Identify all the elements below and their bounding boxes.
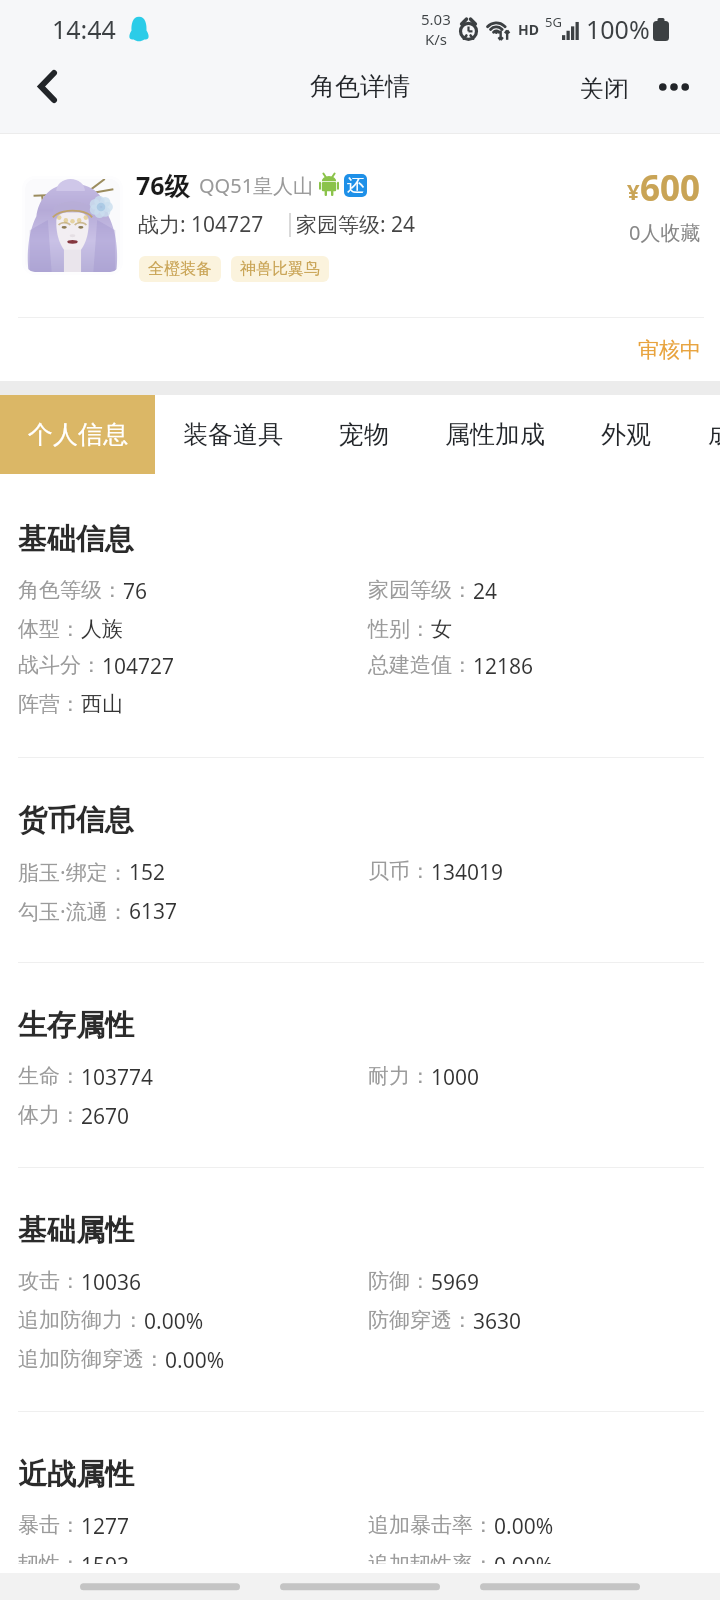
- button[interactable]: 个人信息: [0, 395, 155, 474]
- staticText: 76: [123, 577, 148, 606]
- staticText: 0人收藏: [629, 219, 701, 246]
- staticText: 追加防御力：: [18, 1307, 144, 1333]
- staticText: 暴击：: [18, 1512, 81, 1538]
- button[interactable]: 宠物: [310, 395, 417, 474]
- staticText: 攻击：: [18, 1268, 81, 1294]
- button[interactable]: 外观: [572, 395, 679, 474]
- staticText: 角色等级：: [18, 577, 123, 603]
- button[interactable]: More options: [637, 67, 694, 107]
- staticText: 战斗分：: [18, 652, 102, 678]
- staticText: 总建造值：: [368, 652, 473, 678]
- staticText: 韧性：: [18, 1551, 81, 1564]
- staticText: 审核中: [638, 337, 701, 363]
- button[interactable]: 属性加成: [417, 395, 572, 474]
- staticText: 战力: 104727: [138, 210, 264, 239]
- staticText: 1593: [81, 1551, 130, 1564]
- staticText: 宠物: [339, 419, 389, 450]
- staticText: ¥: [627, 176, 640, 206]
- staticText: 2670: [81, 1102, 130, 1131]
- staticText: 装备道具: [183, 419, 283, 450]
- staticText: 成: [708, 419, 720, 450]
- staticText: 0.00%: [494, 1512, 554, 1541]
- staticText: HD: [518, 20, 539, 39]
- staticText: QQ51皇人山: [199, 172, 314, 199]
- staticText: 基础信息: [18, 521, 134, 558]
- staticText: 3630: [473, 1307, 522, 1336]
- staticText: 生存属性: [18, 1007, 134, 1044]
- button[interactable]: 关闭: [571, 66, 637, 107]
- staticText: 追加暴击率：: [368, 1512, 494, 1538]
- staticText: 1000: [431, 1063, 480, 1092]
- staticText: 0.00%: [165, 1346, 225, 1375]
- staticText: 100%: [586, 12, 650, 46]
- staticText: 属性加成: [445, 419, 545, 450]
- button[interactable]: Back: [0, 66, 94, 107]
- staticText: 1277: [81, 1512, 130, 1541]
- staticText: 脂玉·绑定：: [18, 858, 129, 887]
- staticText: 角色详情: [310, 71, 410, 102]
- staticText: 76级: [136, 168, 190, 202]
- staticText: 家园等级：: [368, 577, 473, 603]
- staticText: 阵营：: [18, 691, 81, 717]
- staticText: 防御穿透：: [368, 1307, 473, 1333]
- staticText: 0.00%: [494, 1551, 554, 1564]
- staticText: 还: [347, 175, 364, 196]
- button[interactable]: 装备道具: [155, 395, 310, 474]
- button[interactable]: 成: [679, 395, 720, 474]
- staticText: 追加韧性率：: [368, 1551, 494, 1564]
- staticText: 关闭: [579, 74, 629, 99]
- staticText: 5.03: [421, 9, 451, 29]
- staticText: 勾玉·流通：: [18, 897, 129, 926]
- staticText: 外观: [601, 419, 651, 450]
- staticText: 基础属性: [18, 1212, 134, 1249]
- staticText: 24: [473, 577, 498, 606]
- staticText: 134019: [431, 858, 504, 887]
- staticText: 10036: [81, 1268, 142, 1297]
- staticText: 152: [129, 858, 166, 887]
- staticText: 近战属性: [18, 1456, 134, 1493]
- staticText: 14:44: [52, 12, 116, 46]
- staticText: 个人信息: [28, 419, 128, 450]
- staticText: 家园等级: 24: [296, 210, 416, 239]
- staticText: 追加防御穿透：: [18, 1346, 165, 1372]
- staticText: 人族: [81, 616, 123, 642]
- staticText: 性别：: [368, 616, 431, 642]
- staticText: K/s: [425, 29, 448, 49]
- staticText: 生命：: [18, 1063, 81, 1089]
- staticText: 西山: [81, 691, 123, 717]
- staticText: 全橙装备: [148, 259, 212, 279]
- staticText: 货币信息: [18, 802, 134, 839]
- staticText: 600: [640, 164, 701, 212]
- staticText: 0.00%: [144, 1307, 204, 1336]
- staticText: 防御：: [368, 1268, 431, 1294]
- staticText: 女: [431, 616, 452, 642]
- staticText: 体力：: [18, 1102, 81, 1128]
- staticText: 5969: [431, 1268, 480, 1297]
- staticText: 103774: [81, 1063, 154, 1092]
- staticText: 12186: [473, 652, 534, 681]
- staticText: 神兽比翼鸟: [240, 259, 320, 279]
- staticText: 体型：: [18, 616, 81, 642]
- staticText: 5G: [545, 13, 562, 31]
- staticText: 耐力：: [368, 1063, 431, 1089]
- staticText: 贝币：: [368, 858, 431, 884]
- staticText: 6137: [129, 897, 178, 926]
- staticText: 104727: [102, 652, 175, 681]
